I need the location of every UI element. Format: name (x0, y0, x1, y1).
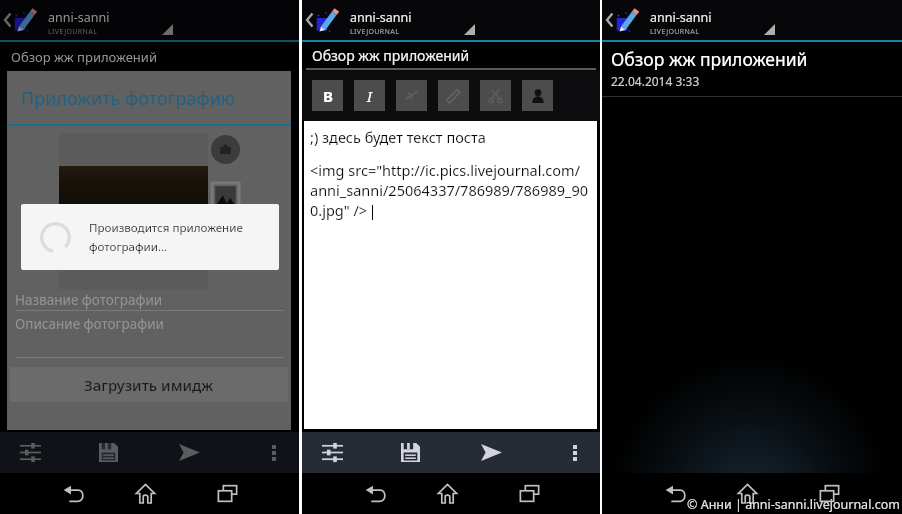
staticText: ;) здесь будет текст поста (310, 127, 486, 147)
button[interactable]: Navigate up (0, 0, 44, 40)
staticText: I (367, 86, 372, 106)
staticText: LIVEJOURNAL (48, 27, 98, 37)
button[interactable]: Home (706, 473, 788, 514)
staticText: Описание фотографии (15, 315, 164, 333)
staticText: Загрузить имидж (84, 375, 214, 395)
button[interactable]: Take photo (211, 135, 240, 164)
button[interactable]: Pick from gallery (212, 183, 239, 210)
button[interactable]: More options (254, 432, 294, 473)
staticText: Производится приложение фотографии… (89, 220, 243, 254)
staticText: anni-sanni (48, 9, 110, 26)
button[interactable]: Show options (150, 0, 184, 40)
button[interactable]: More options (555, 432, 595, 473)
button[interactable]: Recents (186, 473, 268, 514)
button[interactable]: Show options (452, 0, 486, 40)
staticText: <img src="http://ic.pics.livejournal.com… (310, 160, 589, 220)
staticText: Обзор жж приложений (11, 48, 157, 66)
staticText: anni-sanni (350, 9, 412, 26)
button[interactable]: Back (344, 473, 406, 514)
staticText: Название фотографии (15, 291, 163, 309)
staticText: © Анни | anni-sanni.livejournal.com (687, 496, 900, 513)
button[interactable]: Show options (752, 0, 786, 40)
button[interactable]: Italic (354, 80, 385, 111)
button[interactable]: Navigate up (602, 0, 646, 40)
button[interactable]: Recents (788, 473, 870, 514)
button[interactable]: Settings (0, 432, 60, 473)
button[interactable]: Home (104, 473, 186, 514)
button[interactable]: Приложить фотографию (7, 71, 291, 126)
button[interactable]: Загрузить имидж (10, 367, 288, 402)
staticText: anni-sanni (650, 9, 712, 26)
button[interactable]: Navigate up (302, 0, 346, 40)
staticText: Обзор жж приложений (611, 47, 808, 71)
staticText: Приложить фотографию (21, 86, 236, 111)
button[interactable]: Settings (302, 432, 362, 473)
button[interactable]: Marker (438, 80, 469, 111)
button[interactable]: Link (396, 80, 427, 111)
button[interactable]: Save (380, 432, 440, 473)
staticText: LIVEJOURNAL (350, 27, 400, 37)
button[interactable]: Send (461, 432, 521, 473)
button[interactable]: Home (406, 473, 488, 514)
button[interactable]: Back (644, 473, 706, 514)
button[interactable]: Recents (488, 473, 570, 514)
button[interactable]: User (522, 80, 553, 111)
staticText: LIVEJOURNAL (650, 27, 700, 37)
staticText: Обзор жж приложений (312, 46, 470, 65)
staticText: B (323, 86, 333, 106)
button[interactable]: Save (78, 432, 138, 473)
button[interactable]: Cut (480, 80, 511, 111)
button[interactable]: Back (42, 473, 104, 514)
staticText: 22.04.2014 3:33 (611, 73, 700, 89)
button[interactable]: Send (159, 432, 219, 473)
button[interactable]: Bold (312, 80, 343, 111)
